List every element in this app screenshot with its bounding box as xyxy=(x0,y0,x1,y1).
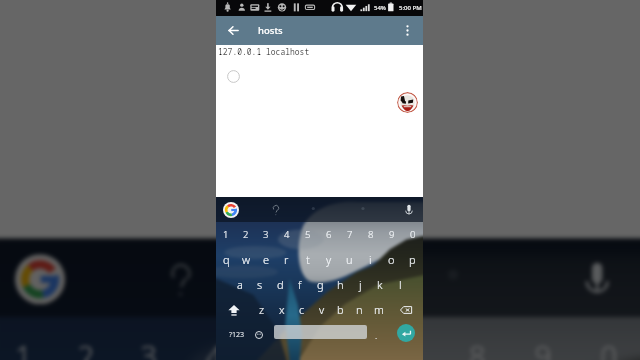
staticText: r xyxy=(284,252,289,267)
button[interactable]: Google xyxy=(15,254,65,304)
button[interactable]: 4 xyxy=(276,222,297,247)
button[interactable]: f xyxy=(290,272,310,297)
button[interactable]: 7 xyxy=(339,222,360,247)
button[interactable]: o xyxy=(381,247,402,272)
button[interactable]: 1 xyxy=(216,222,236,247)
staticText: u xyxy=(346,252,353,267)
button[interactable]: 6 xyxy=(318,222,339,247)
staticText: w xyxy=(242,252,251,267)
button[interactable]: p xyxy=(402,247,423,272)
staticText: 3 xyxy=(140,336,159,360)
button[interactable]: Voice input xyxy=(401,202,417,218)
staticText: n xyxy=(356,302,363,317)
button[interactable]: w xyxy=(236,247,256,272)
button[interactable]: t xyxy=(297,247,318,272)
button[interactable]: Delete xyxy=(388,297,423,322)
button[interactable]: 1 xyxy=(0,317,56,360)
staticText: ?123 xyxy=(229,330,244,340)
button[interactable]: j xyxy=(350,272,370,297)
button[interactable]: 0 xyxy=(402,222,423,247)
button[interactable]: 3 xyxy=(256,222,276,247)
staticText: 7 xyxy=(403,336,422,360)
button[interactable]: y xyxy=(318,247,339,272)
button[interactable]: Apply host changes xyxy=(397,92,418,113)
button[interactable]: m xyxy=(369,297,388,322)
staticText: z xyxy=(259,302,265,317)
button[interactable]: Navigate up xyxy=(220,17,247,44)
button[interactable]: More options xyxy=(394,17,421,44)
button[interactable]: e xyxy=(256,247,276,272)
button[interactable]: i xyxy=(360,247,381,272)
staticText: q xyxy=(223,252,230,267)
staticText: 4 xyxy=(206,336,225,360)
staticText: 9 xyxy=(389,228,395,241)
button[interactable]: r xyxy=(276,247,297,272)
button[interactable]: 0 xyxy=(575,317,640,360)
staticText: 7 xyxy=(347,228,353,241)
staticText: x xyxy=(279,302,285,317)
button[interactable]: 9 xyxy=(509,317,575,360)
button[interactable]: n xyxy=(350,297,369,322)
staticText: 5 xyxy=(305,228,311,241)
button[interactable]: h xyxy=(330,272,350,297)
staticText: k xyxy=(377,277,383,292)
staticText: y xyxy=(326,252,332,267)
staticText: l xyxy=(399,277,402,292)
button[interactable]: 2 xyxy=(56,317,118,360)
staticText: 5:00 PM xyxy=(399,4,422,12)
button[interactable]: . xyxy=(368,322,384,347)
staticText: 8 xyxy=(469,336,488,360)
button[interactable]: Voice input xyxy=(572,254,622,304)
staticText: 1 xyxy=(15,336,34,360)
button[interactable]: q xyxy=(216,247,236,272)
staticText: 54% xyxy=(374,4,386,12)
button[interactable]: 5 xyxy=(247,317,312,360)
staticText: 0 xyxy=(410,228,416,241)
staticText: 0 xyxy=(600,336,619,360)
button[interactable]: Space xyxy=(274,325,367,339)
button[interactable]: Google xyxy=(223,202,239,218)
button[interactable]: g xyxy=(310,272,330,297)
button[interactable]: Clipboard xyxy=(156,254,206,304)
button[interactable]: u xyxy=(339,247,360,272)
button[interactable]: b xyxy=(331,297,350,322)
button[interactable]: 8 xyxy=(360,222,381,247)
button[interactable]: x xyxy=(272,297,292,322)
button[interactable]: z xyxy=(252,297,272,322)
staticText: 127.0.0.1 localhost xyxy=(218,46,310,57)
button[interactable]: 6 xyxy=(312,317,378,360)
button[interactable]: v xyxy=(312,297,331,322)
staticText: h xyxy=(337,277,344,292)
staticText: 8 xyxy=(368,228,374,241)
button[interactable]: a xyxy=(230,272,250,297)
button[interactable]: Shift xyxy=(216,297,252,322)
button[interactable]: Emoji xyxy=(249,322,269,347)
button[interactable]: Clipboard xyxy=(268,202,284,218)
staticText: t xyxy=(306,252,310,267)
button[interactable]: l xyxy=(390,272,410,297)
staticText: a xyxy=(237,277,243,292)
button[interactable]: 3 xyxy=(118,317,181,360)
button[interactable]: d xyxy=(270,272,290,297)
button[interactable]: k xyxy=(370,272,390,297)
button[interactable]: Enter xyxy=(397,324,415,342)
staticText: i xyxy=(369,252,372,267)
button[interactable]: 5 xyxy=(297,222,318,247)
button[interactable]: 4 xyxy=(181,317,247,360)
staticText: 5 xyxy=(272,336,290,360)
button[interactable]: ?123 xyxy=(224,322,248,347)
staticText: e xyxy=(263,252,270,267)
button[interactable]: 8 xyxy=(444,317,509,360)
staticText: j xyxy=(359,277,362,292)
button[interactable]: s xyxy=(250,272,270,297)
staticText: v xyxy=(319,302,325,317)
button[interactable]: 7 xyxy=(378,317,444,360)
button[interactable]: 9 xyxy=(381,222,402,247)
staticText: d xyxy=(277,277,284,292)
button[interactable]: c xyxy=(292,297,312,322)
staticText: c xyxy=(299,302,305,317)
staticText: 1 xyxy=(223,228,229,241)
staticText: m xyxy=(374,302,384,317)
button[interactable]: 2 xyxy=(236,222,256,247)
staticText: p xyxy=(409,252,416,267)
